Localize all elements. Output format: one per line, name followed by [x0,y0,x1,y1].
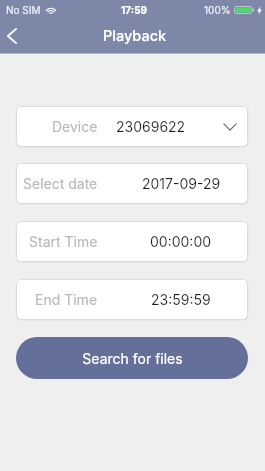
staticText: Select date [23,175,98,192]
button[interactable]: Select date [16,163,248,204]
staticText: 23069622 [116,118,186,135]
button[interactable]: End Time [16,279,248,320]
staticText: Start Time [29,233,98,250]
staticText: 17:59 [121,4,148,16]
staticText: Search for files [82,350,183,367]
staticText: End Time [35,291,98,308]
staticText: 2017-09-29 [142,175,221,192]
button[interactable]: Search for files [16,337,248,379]
staticText: Device [52,118,98,135]
button[interactable]: Start Time [16,221,248,262]
staticText: 23:59:59 [151,291,211,308]
staticText: No SIM [6,4,41,16]
staticText: 00:00:00 [150,233,212,250]
button[interactable]: Back [0,21,27,51]
staticText: 100% [204,4,231,16]
button[interactable]: Device [16,106,248,147]
staticText: Playback [103,27,167,45]
